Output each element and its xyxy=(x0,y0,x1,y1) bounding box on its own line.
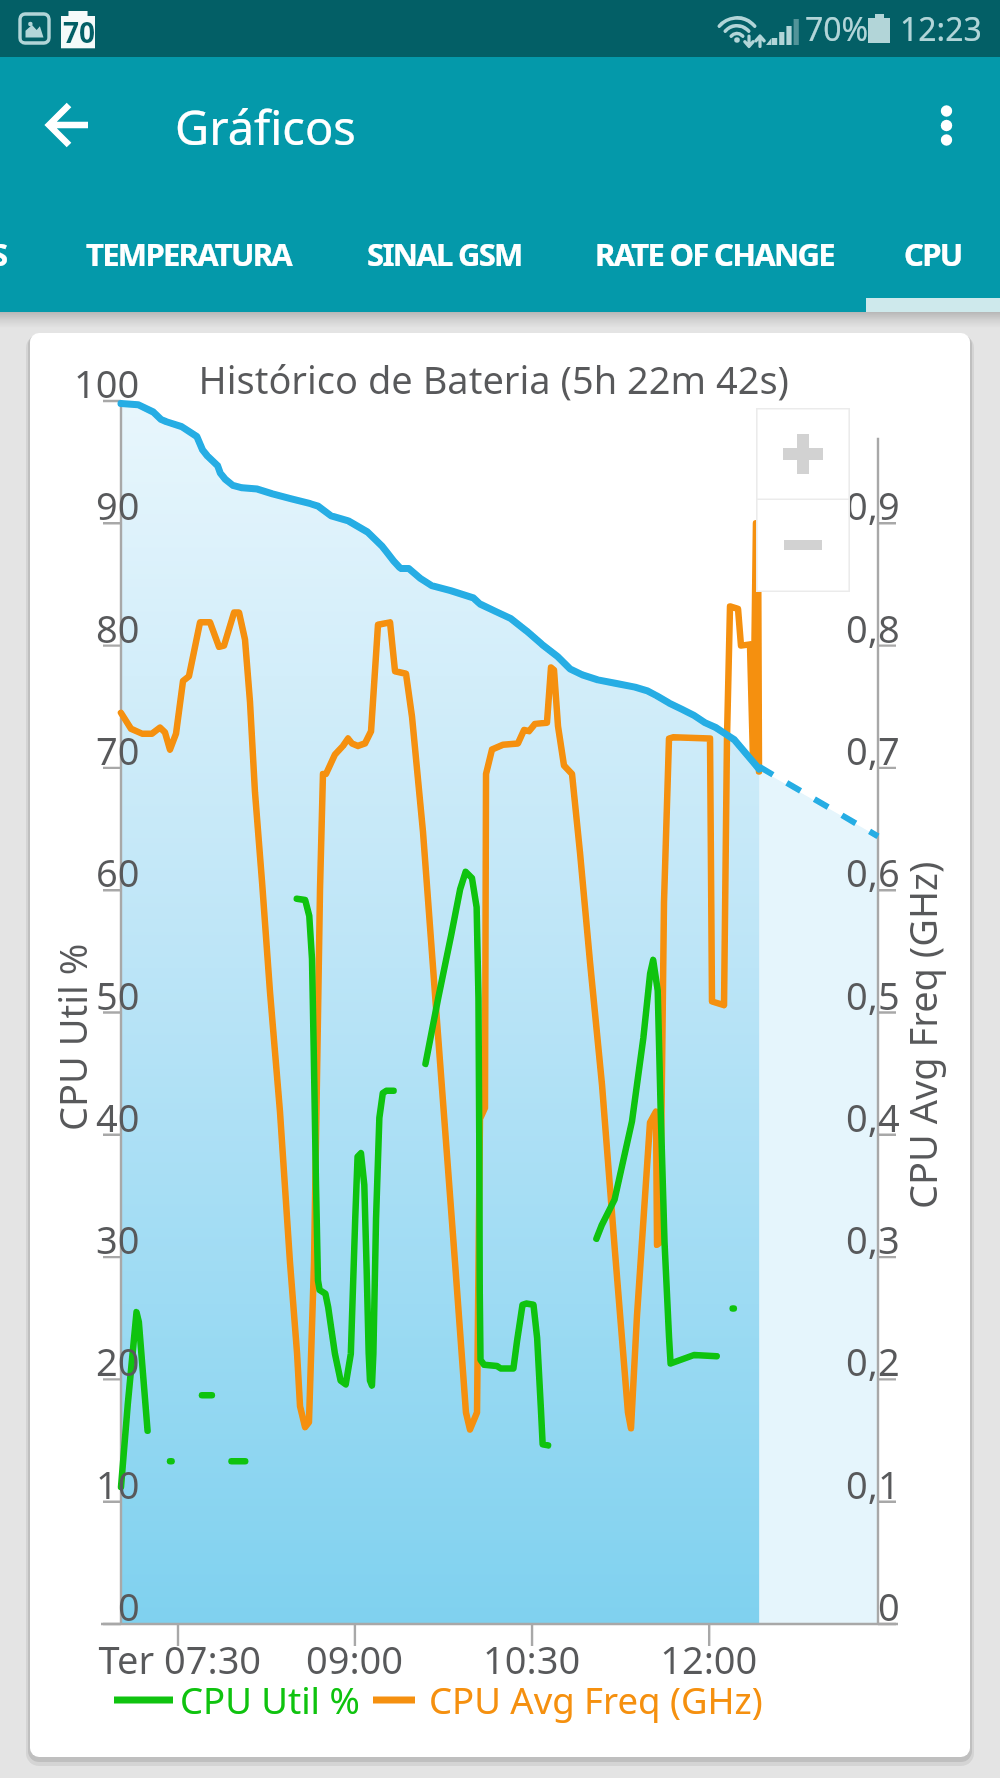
button[interactable]: Zoom in xyxy=(756,408,850,500)
button[interactable]: CPU xyxy=(904,233,962,275)
button[interactable]: SINAL GSM xyxy=(367,233,522,275)
staticText: 70% xyxy=(805,7,869,51)
button[interactable]: S xyxy=(0,233,7,275)
staticText: 12:23 xyxy=(900,7,982,51)
button[interactable]: TEMPERATURA xyxy=(86,233,292,275)
staticText: Gráficos xyxy=(175,95,356,159)
button[interactable]: RATE OF CHANGE xyxy=(595,233,834,275)
button[interactable]: Back xyxy=(21,78,115,172)
staticText: 70 xyxy=(63,13,96,51)
button[interactable]: More options xyxy=(900,78,994,172)
button[interactable]: Zoom out xyxy=(756,500,850,592)
